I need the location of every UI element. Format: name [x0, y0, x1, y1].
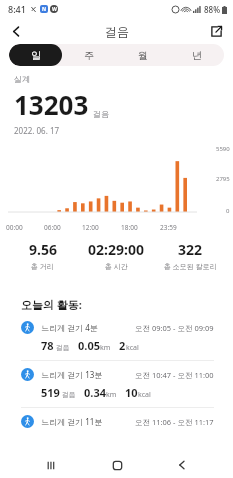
- staticText: 오전 09:05 - 오전 09:09: [135, 323, 214, 333]
- staticText: 오전 11:06 - 오전 11:17: [135, 417, 214, 427]
- staticText: 오전 10:47 - 오전 11:00: [135, 370, 214, 380]
- staticText: 0.05: [78, 338, 100, 353]
- staticText: 월: [138, 49, 148, 62]
- staticText: N: [42, 6, 47, 13]
- staticText: 5590: [216, 145, 230, 153]
- staticText: 519: [41, 385, 60, 400]
- staticText: 걸음: [105, 24, 129, 39]
- button[interactable]: 02:29:00: [79, 240, 153, 272]
- button[interactable]: Home: [102, 452, 132, 478]
- staticText: 88%: [204, 4, 220, 15]
- staticText: kcal: [138, 390, 151, 400]
- button[interactable]: 일: [9, 44, 62, 66]
- button[interactable]: 월: [116, 44, 170, 66]
- staticText: 걸음: [60, 390, 76, 400]
- staticText: 9.56: [29, 240, 57, 259]
- staticText: 년: [192, 49, 202, 62]
- staticText: 느리게 걷기 4분: [41, 322, 98, 333]
- staticText: 10: [125, 385, 138, 400]
- staticText: 02:29:00: [88, 240, 144, 259]
- button[interactable]: 주: [62, 44, 116, 66]
- staticText: 오늘의 활동:: [21, 297, 82, 312]
- staticText: 06:00: [44, 223, 61, 232]
- staticText: 느리게 걷기 11분: [41, 416, 103, 427]
- staticText: 0: [226, 207, 230, 215]
- staticText: 2795: [216, 175, 230, 183]
- button[interactable]: 느리게 걷기 4분: [21, 321, 214, 353]
- staticText: 322: [178, 240, 203, 259]
- staticText: 실계: [14, 74, 30, 84]
- staticText: 12:00: [82, 223, 99, 232]
- button[interactable]: Back: [167, 452, 197, 478]
- staticText: 걸음: [54, 343, 70, 353]
- staticText: 23:59: [160, 223, 177, 232]
- staticText: 총 거리: [31, 262, 54, 272]
- staticText: km: [106, 390, 117, 400]
- button[interactable]: Share: [205, 20, 227, 42]
- button[interactable]: Back: [4, 19, 28, 43]
- staticText: km: [100, 343, 111, 353]
- button[interactable]: 년: [170, 44, 224, 66]
- staticText: kcal: [126, 343, 139, 353]
- button[interactable]: 느리게 걷기 13분: [21, 368, 214, 400]
- staticText: 총 소모된 칼로리: [164, 262, 217, 272]
- staticText: 2022. 06. 17: [14, 125, 60, 136]
- staticText: 일: [31, 49, 41, 62]
- staticText: 8:41: [8, 3, 26, 15]
- button[interactable]: Recents: [36, 452, 66, 478]
- button[interactable]: 322: [153, 240, 227, 272]
- staticText: 2: [119, 338, 126, 353]
- staticText: 78: [41, 338, 54, 353]
- button[interactable]: 9.56: [6, 240, 79, 272]
- staticText: 느리게 걷기 13분: [41, 369, 103, 380]
- staticText: W: [52, 6, 57, 13]
- staticText: 00:00: [6, 223, 23, 232]
- button[interactable]: 느리게 걷기 11분: [21, 415, 214, 428]
- staticText: 0.34: [84, 385, 106, 400]
- staticText: 주: [84, 49, 94, 62]
- staticText: 총 시간: [105, 262, 128, 272]
- staticText: 걸음: [93, 109, 109, 119]
- staticText: 13203: [14, 87, 89, 122]
- staticText: 18:00: [121, 223, 138, 232]
